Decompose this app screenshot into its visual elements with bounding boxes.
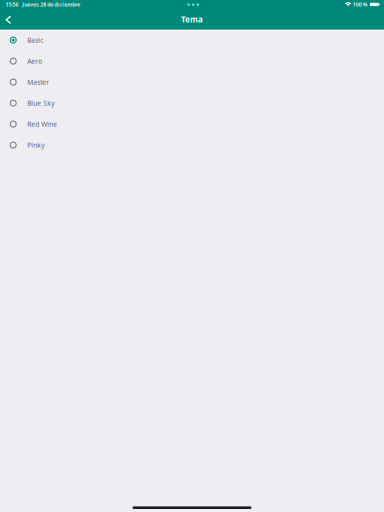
staticText: Blue Sky: [27, 99, 54, 108]
button[interactable]: Blue Sky: [0, 93, 384, 114]
staticText: Tema: [181, 14, 203, 25]
button[interactable]: Aero: [0, 51, 384, 72]
button[interactable]: Master: [0, 72, 384, 93]
staticText: Jueves 28 de diciembre: [22, 1, 80, 8]
button[interactable]: Basic: [0, 30, 384, 51]
staticText: Aero: [27, 57, 42, 66]
button[interactable]: Back: [0, 9, 17, 30]
staticText: 100 %: [353, 1, 368, 8]
staticText: Pinky: [27, 141, 44, 150]
staticText: Basic: [27, 36, 43, 45]
staticText: Red Wine: [27, 120, 57, 129]
button[interactable]: Red Wine: [0, 114, 384, 135]
button[interactable]: Pinky: [0, 135, 384, 156]
staticText: 15:56: [6, 1, 19, 8]
staticText: Master: [27, 78, 49, 87]
